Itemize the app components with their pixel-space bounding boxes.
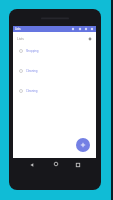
button[interactable]: More options [90,27,94,31]
button[interactable]: Cleaning [13,61,96,81]
button[interactable]: Home [52,160,60,168]
button[interactable]: Search [71,27,75,31]
button[interactable]: Cleaning [13,81,96,101]
staticText: Cleaning [26,89,38,93]
staticText: Cleaning [26,69,38,73]
staticText: Lists [15,27,21,31]
button[interactable]: Shopping [13,41,96,61]
button[interactable]: Sort [78,27,82,31]
staticText: Lists [17,37,24,41]
staticText: Shopping [26,49,39,53]
button[interactable]: Lists [13,35,96,43]
button[interactable]: Account [88,37,92,41]
button[interactable]: Add list [76,138,90,152]
button[interactable]: Back [28,161,36,169]
button[interactable]: Filter [84,27,88,31]
button[interactable]: Recent apps [74,161,82,169]
